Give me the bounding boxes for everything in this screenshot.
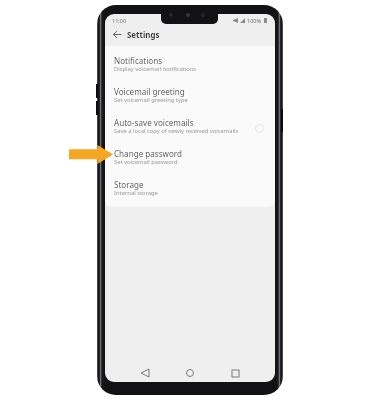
staticText: Set voicemail password [114, 158, 178, 166]
button[interactable]: Back [137, 365, 153, 381]
button[interactable]: Notifications [105, 50, 275, 81]
staticText: Voicemail greeting [114, 86, 185, 97]
button[interactable]: Change password [105, 143, 275, 174]
button[interactable]: Recents [227, 365, 243, 381]
staticText: 100% [247, 17, 262, 24]
staticText: Storage [114, 179, 144, 190]
staticText: Display voicemail notifications [114, 65, 197, 73]
staticText: Save a local copy of newly received voic… [114, 127, 239, 135]
staticText: Settings [127, 30, 160, 41]
staticText: Set voicemail greeting type [114, 96, 188, 104]
staticText: 11:00 [112, 17, 127, 24]
staticText: Change password [114, 148, 182, 159]
staticText: Internal storage [114, 189, 158, 197]
staticText: Auto-save voicemails [114, 117, 194, 128]
staticText: Notifications [114, 55, 163, 66]
button[interactable]: Voicemail greeting [105, 81, 275, 112]
button[interactable]: Auto-save voicemails [105, 112, 275, 143]
button[interactable]: Back [108, 27, 126, 42]
button[interactable]: Home [182, 365, 198, 381]
button[interactable]: Storage [105, 174, 275, 205]
